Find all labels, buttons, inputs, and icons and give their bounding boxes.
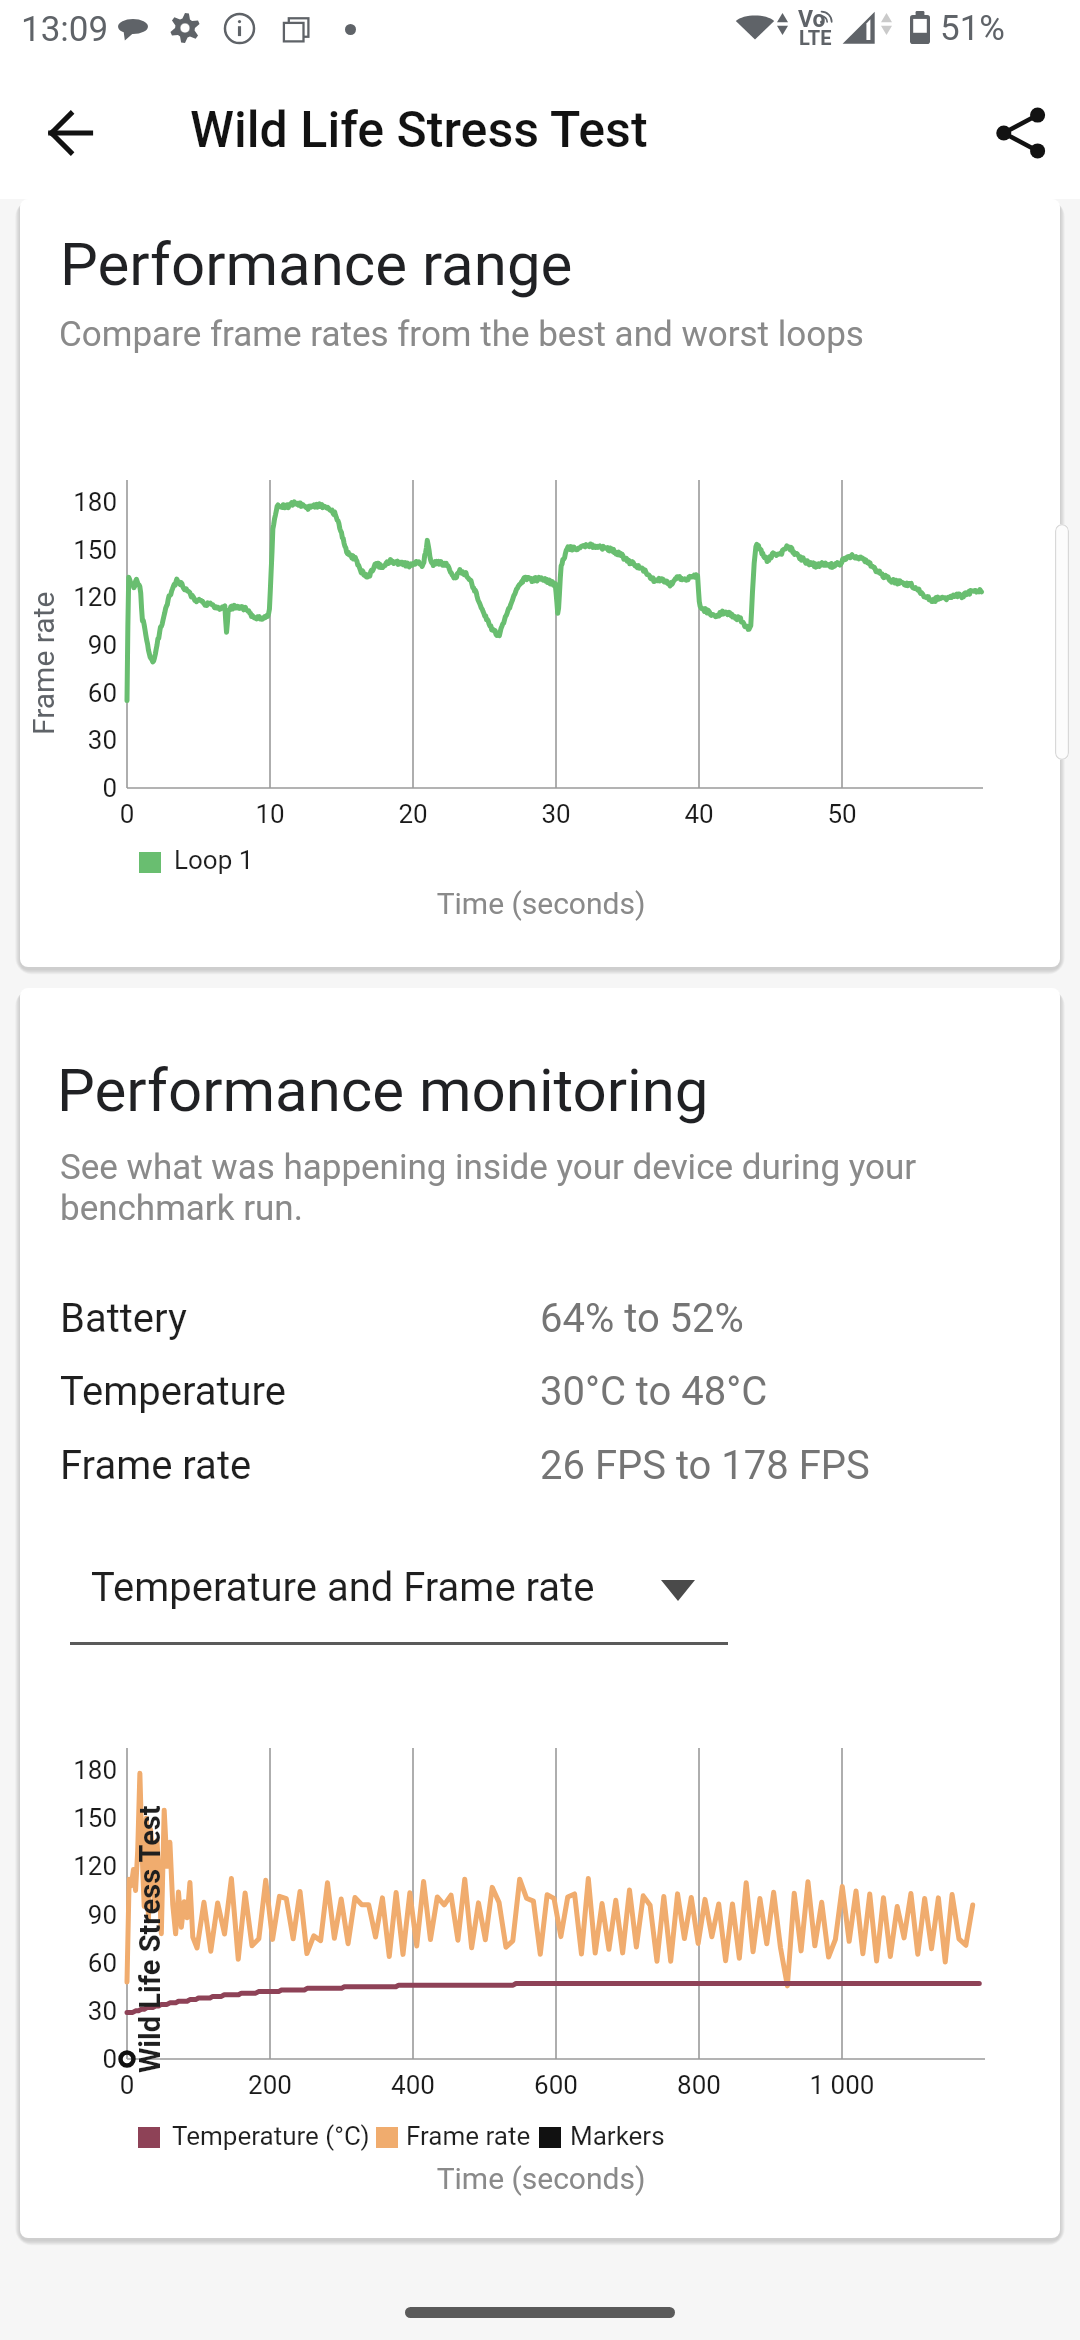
staticText: 1 000 (762, 2070, 922, 2100)
staticText: Battery (60, 1295, 187, 1342)
staticText: 0 (20, 773, 117, 803)
button[interactable]: Back (28, 91, 112, 175)
staticText: 180 (20, 1755, 117, 1785)
staticText: 40 (619, 799, 779, 829)
staticText: Markers (570, 2121, 665, 2151)
staticText: 30 (20, 725, 117, 755)
staticText: Performance range (60, 229, 573, 299)
staticText: Frame rate (26, 591, 61, 735)
staticText: Wild Life Stress Test (190, 101, 648, 160)
staticText: Compare frame rates from the best and wo… (59, 314, 864, 355)
staticText: 26 FPS to 178 FPS (540, 1442, 870, 1489)
staticText: 180 (20, 487, 117, 517)
staticText: 90 (20, 1900, 117, 1930)
staticText: 60 (20, 678, 117, 708)
staticText: 150 (20, 535, 117, 565)
staticText: LTE (799, 26, 832, 49)
staticText: Vo (798, 6, 826, 33)
staticText: 120 (20, 582, 117, 612)
button[interactable]: Share (980, 91, 1064, 175)
staticText: 400 (333, 2070, 493, 2100)
staticText: 600 (476, 2070, 636, 2100)
staticText: 0 (20, 2044, 117, 2074)
staticText: Loop 1 (174, 845, 254, 875)
staticText: 0 (47, 799, 207, 829)
staticText: 200 (190, 2070, 350, 2100)
staticText: 20 (333, 799, 493, 829)
staticText: Wild Life Stress Test (133, 1805, 167, 2073)
staticText: Time (seconds) (431, 2161, 651, 2196)
staticText: 800 (619, 2070, 779, 2100)
staticText: 30°C to 48°C (540, 1368, 768, 1415)
staticText: 90 (20, 630, 117, 660)
staticText: 13:09 (21, 9, 109, 50)
staticText: 51% (940, 8, 1005, 49)
staticText: Temperature (60, 1368, 286, 1415)
staticText: Temperature (°C) (172, 2121, 370, 2151)
staticText: 30 (20, 1996, 117, 2026)
staticText: See what was happening inside your devic… (60, 1147, 917, 1229)
staticText: 64% to 52% (540, 1295, 744, 1342)
staticText: 60 (20, 1948, 117, 1978)
staticText: 30 (476, 799, 636, 829)
staticText: Performance monitoring (57, 1055, 709, 1125)
staticText: Time (seconds) (431, 886, 651, 921)
staticText: 50 (762, 799, 922, 829)
button[interactable]: Temperature and Frame rate (70, 1558, 728, 1645)
staticText: 150 (20, 1803, 117, 1833)
staticText: 10 (190, 799, 350, 829)
staticText: 120 (20, 1851, 117, 1881)
staticText: Temperature and Frame rate (91, 1564, 595, 1611)
staticText: 0 (47, 2070, 207, 2100)
staticText: Frame rate (406, 2121, 531, 2151)
staticText: Frame rate (60, 1442, 252, 1489)
